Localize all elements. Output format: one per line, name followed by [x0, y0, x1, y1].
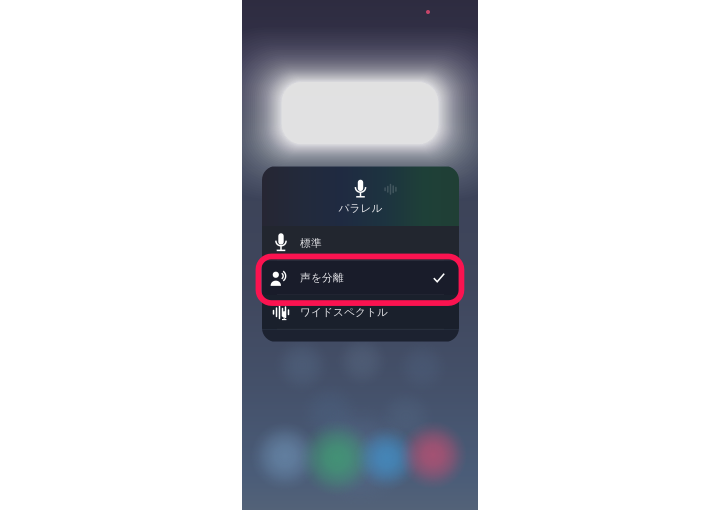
staticText: 標準: [300, 237, 322, 250]
button[interactable]: 声を分離: [262, 260, 459, 295]
staticText: パラレル: [338, 202, 382, 215]
staticText: 声を分離: [300, 271, 344, 284]
button[interactable]: ワイドスペクトル: [262, 295, 459, 329]
staticText: ワイドスペクトル: [300, 306, 388, 319]
button[interactable]: 標準: [262, 226, 459, 260]
